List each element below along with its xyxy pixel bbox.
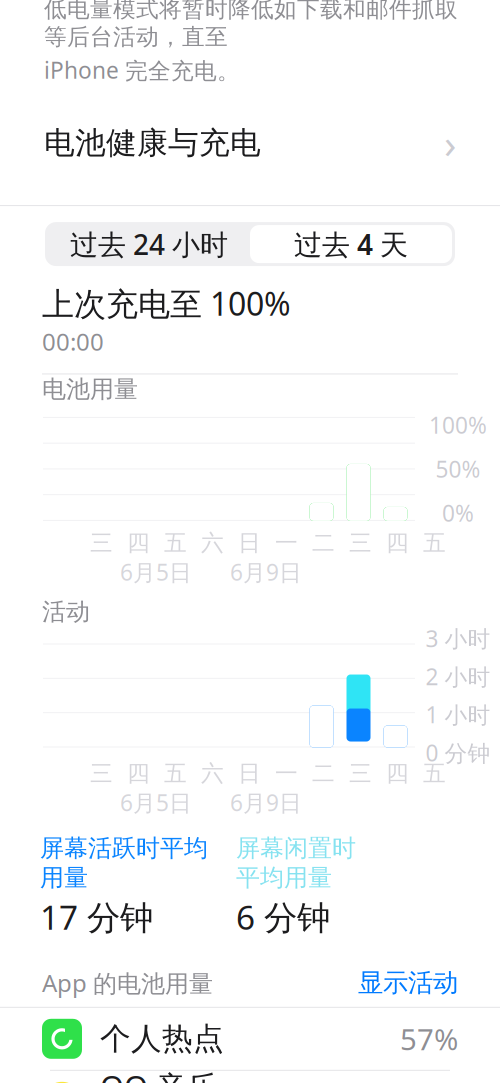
staticText: 00:00 (42, 326, 104, 357)
staticText: App 的电池用量 (42, 967, 213, 999)
staticText: 电池用量 (42, 374, 138, 404)
staticText: 五 (164, 529, 187, 557)
staticText: 二 (312, 529, 335, 557)
staticText: 五 (423, 760, 446, 787)
button[interactable]: 个人热点 (0, 1008, 500, 1070)
staticText: 50% (435, 454, 480, 484)
staticText: 四 (386, 760, 409, 787)
staticText: 五 (423, 529, 446, 557)
staticText: 四 (127, 760, 150, 787)
staticText: 三 (90, 760, 113, 787)
staticText: 过去 4 天 (294, 225, 408, 263)
staticText: 四 (127, 529, 150, 557)
staticText: 0% (442, 498, 474, 528)
staticText: 6月5日 (120, 787, 192, 818)
button[interactable]: 过去 4 天 (250, 225, 452, 263)
button[interactable]: 显示活动 (358, 967, 458, 998)
staticText: 6月5日 (120, 557, 192, 587)
button[interactable]: 电池健康与充电 (0, 111, 500, 175)
staticText: 显示活动 (358, 967, 458, 998)
staticText: 日 (238, 760, 261, 787)
staticText: 屏幕闲置时平均用量 (236, 834, 356, 893)
staticText: 过去 24 小时 (70, 225, 228, 263)
staticText: 日 (238, 529, 261, 557)
staticText: 二 (312, 760, 335, 787)
staticText: 低电量模式将暂时降低如下载和邮件抓取等后台活动，直至 (44, 0, 458, 51)
staticText: 个人热点 (100, 1020, 224, 1058)
staticText: QQ 音乐 (100, 1066, 218, 1083)
staticText: 三 (349, 760, 372, 787)
button[interactable]: QQ 音乐 (0, 1071, 500, 1083)
staticText: › (444, 116, 456, 170)
staticText: 一 (275, 760, 298, 787)
button[interactable]: 过去 24 小时 (48, 225, 250, 263)
staticText: 活动 (42, 597, 90, 626)
staticText: iPhone 完全充电。 (44, 55, 240, 85)
staticText: 6 分钟 (236, 895, 330, 939)
staticText: 上次充电至 100% (42, 282, 291, 325)
staticText: 6月9日 (230, 787, 302, 818)
staticText: 六 (201, 760, 224, 787)
staticText: 57% (400, 1019, 458, 1058)
staticText: 17 分钟 (40, 895, 153, 939)
staticText: 2 小时 (425, 661, 490, 691)
staticText: 3 小时 (425, 623, 490, 653)
staticText: 6月9日 (230, 557, 302, 587)
staticText: 三 (90, 529, 113, 557)
staticText: 1 小时 (425, 699, 490, 730)
staticText: 0 分钟 (425, 738, 490, 768)
staticText: 三 (349, 529, 372, 557)
staticText: 四 (386, 529, 409, 557)
staticText: 一 (275, 529, 298, 557)
staticText: 100% (429, 410, 487, 440)
staticText: 五 (164, 760, 187, 787)
staticText: 电池健康与充电 (44, 124, 261, 162)
staticText: 屏幕活跃时平均用量 (40, 834, 208, 893)
staticText: 六 (201, 529, 224, 557)
